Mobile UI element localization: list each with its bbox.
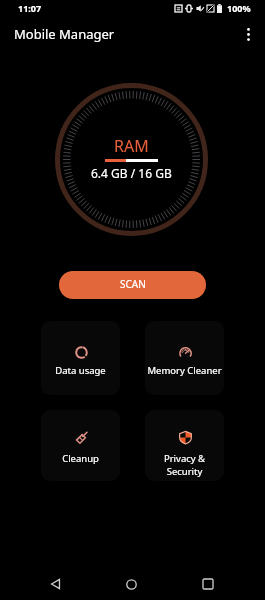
staticText: Memory Cleaner <box>145 364 224 377</box>
staticText: 11:07 <box>18 2 42 14</box>
button[interactable]: SCAN <box>59 271 206 299</box>
staticText: Mobile Manager <box>14 25 115 43</box>
button[interactable]: Memory Cleaner <box>145 321 224 395</box>
staticText: RAM <box>114 135 149 157</box>
button[interactable]: Cleanup <box>41 410 120 481</box>
staticText: 6.4 GB / 16 GB <box>91 165 172 181</box>
button[interactable]: More options <box>233 19 263 49</box>
staticText: Data usage <box>41 364 120 377</box>
staticText: 100% <box>227 2 251 14</box>
staticText: Privacy & Security <box>145 452 224 478</box>
button[interactable]: Privacy & Security <box>145 410 224 481</box>
button[interactable]: Recent apps <box>186 562 230 600</box>
staticText: Cleanup <box>41 452 120 465</box>
button[interactable]: Back <box>33 562 77 600</box>
button[interactable]: Data usage <box>41 321 120 395</box>
staticText: SCAN <box>120 277 146 291</box>
button[interactable]: Home <box>109 562 153 600</box>
